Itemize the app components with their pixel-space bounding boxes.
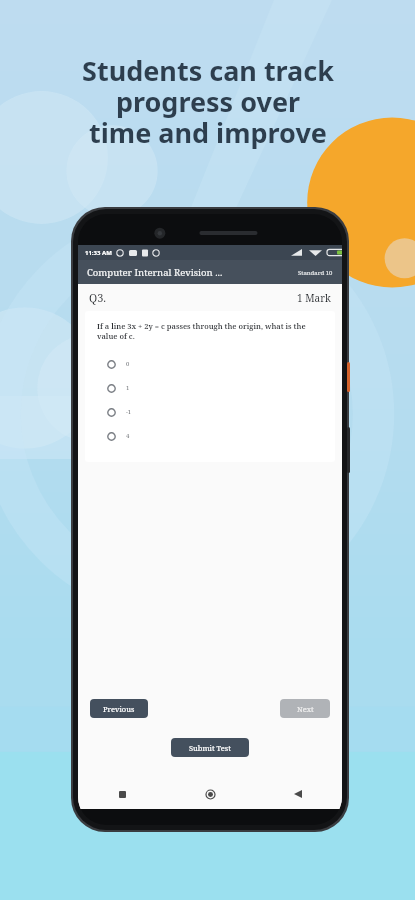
staticText: Q3. — [89, 290, 107, 305]
staticText: 1 Mark — [297, 291, 331, 305]
staticText: 0 — [126, 360, 130, 368]
button[interactable]: Recent apps — [78, 783, 166, 805]
button[interactable]: 4 — [97, 424, 325, 448]
button[interactable]: 0 — [97, 352, 325, 376]
staticText: 1 — [126, 384, 130, 392]
button[interactable]: -1 — [97, 400, 325, 424]
staticText: 4 — [126, 432, 130, 440]
staticText: Submit Test — [189, 743, 231, 753]
button[interactable]: Home — [166, 783, 254, 805]
button[interactable]: 1 — [97, 376, 325, 400]
staticText: 11:33 AM — [85, 249, 112, 257]
staticText: Students can track progress over time an… — [82, 52, 334, 151]
staticText: -1 — [126, 408, 132, 416]
button[interactable]: Previous — [90, 699, 148, 718]
staticText: Standard 10 — [298, 269, 333, 277]
button[interactable]: Submit Test — [171, 738, 249, 757]
staticText: Computer Internal Revision ... — [87, 266, 223, 279]
button[interactable]: Next — [280, 699, 330, 718]
staticText: Next — [297, 704, 314, 714]
staticText: If a line 3x + 2y = c passes through the… — [97, 321, 325, 341]
staticText: Previous — [103, 704, 135, 714]
button[interactable]: Back — [254, 783, 342, 805]
